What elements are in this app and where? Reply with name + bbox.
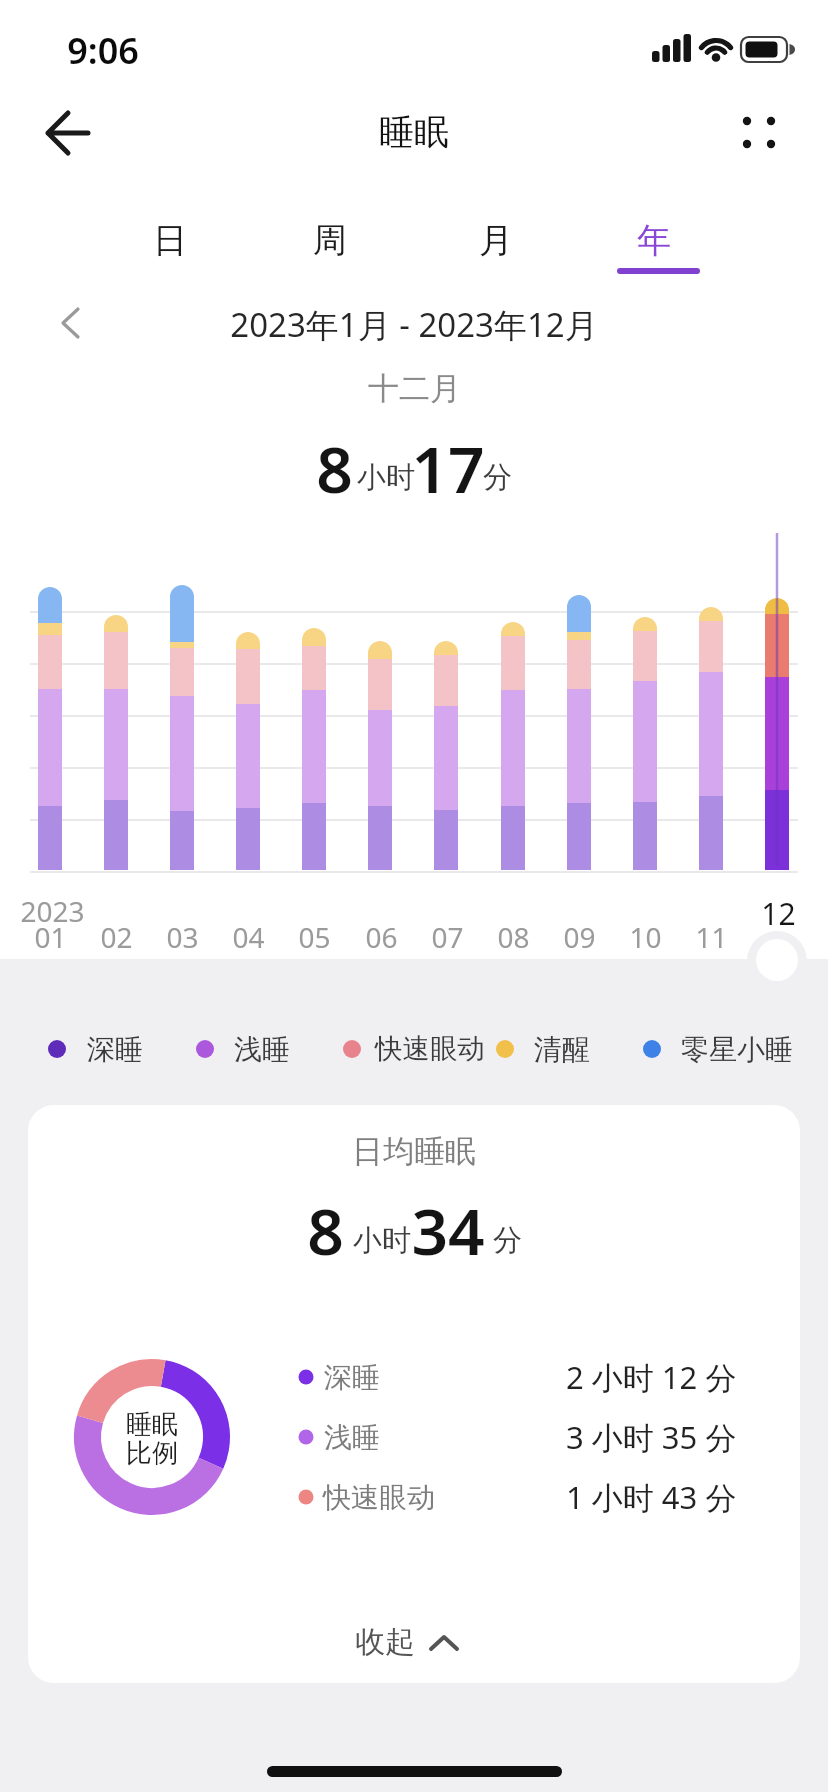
staticText: 05 xyxy=(298,918,331,956)
staticText: 日均睡眠 xyxy=(352,1132,476,1171)
staticText: 月 xyxy=(479,219,513,262)
staticText: 分 xyxy=(493,1222,522,1259)
staticText: 浅睡 xyxy=(234,1032,290,1067)
staticText: 04 xyxy=(232,918,265,956)
staticText: 17 xyxy=(411,425,485,512)
staticText: 快速眼动 xyxy=(323,1480,435,1515)
staticText: 年 xyxy=(637,219,671,262)
staticText: 09 xyxy=(563,918,596,956)
staticText: 01 xyxy=(34,918,67,956)
staticText: 11 xyxy=(695,918,728,956)
staticText: 小时 xyxy=(353,1222,411,1259)
staticText: 2023年1月 - 2023年12月 xyxy=(230,302,598,347)
staticText: 34 xyxy=(411,1187,485,1274)
staticText: 03 xyxy=(166,918,199,956)
button[interactable] xyxy=(725,99,795,167)
staticText: 12 xyxy=(761,893,796,934)
staticText: 9:06 xyxy=(67,26,139,75)
button[interactable] xyxy=(40,296,96,352)
staticText: 零星小睡 xyxy=(681,1032,793,1067)
staticText: 2 小时 12 分 xyxy=(566,1356,737,1398)
staticText: 清醒 xyxy=(534,1032,590,1067)
staticText: 收起 xyxy=(355,1623,415,1661)
staticText: 8 xyxy=(307,1187,344,1274)
staticText: 小时 xyxy=(357,459,415,496)
staticText: 日 xyxy=(153,219,187,262)
staticText: 07 xyxy=(431,918,464,956)
button[interactable]: 年 xyxy=(594,207,714,273)
staticText: 分 xyxy=(483,459,512,496)
staticText: 8 xyxy=(316,425,353,512)
staticText: 浅睡 xyxy=(324,1420,380,1455)
button[interactable]: 日 xyxy=(110,207,230,273)
button[interactable]: 周 xyxy=(270,207,390,273)
staticText: 睡眠 比例 xyxy=(126,1408,178,1469)
staticText: 06 xyxy=(365,918,398,956)
button[interactable]: 月 xyxy=(436,207,556,273)
staticText: 周 xyxy=(313,219,347,262)
staticText: 十二月 xyxy=(368,369,461,408)
staticText: 10 xyxy=(629,918,662,956)
staticText: 1 小时 43 分 xyxy=(566,1476,737,1518)
staticText: 3 小时 35 分 xyxy=(566,1416,737,1458)
staticText: 2023 xyxy=(20,892,85,930)
staticText: 02 xyxy=(100,918,133,956)
button[interactable] xyxy=(30,100,106,166)
staticText: 快速眼动 xyxy=(375,1032,485,1067)
staticText: 深睡 xyxy=(324,1360,380,1395)
button[interactable] xyxy=(340,1613,490,1673)
staticText: 睡眠 xyxy=(379,110,449,154)
staticText: 08 xyxy=(497,918,530,956)
staticText: 深睡 xyxy=(87,1032,143,1067)
